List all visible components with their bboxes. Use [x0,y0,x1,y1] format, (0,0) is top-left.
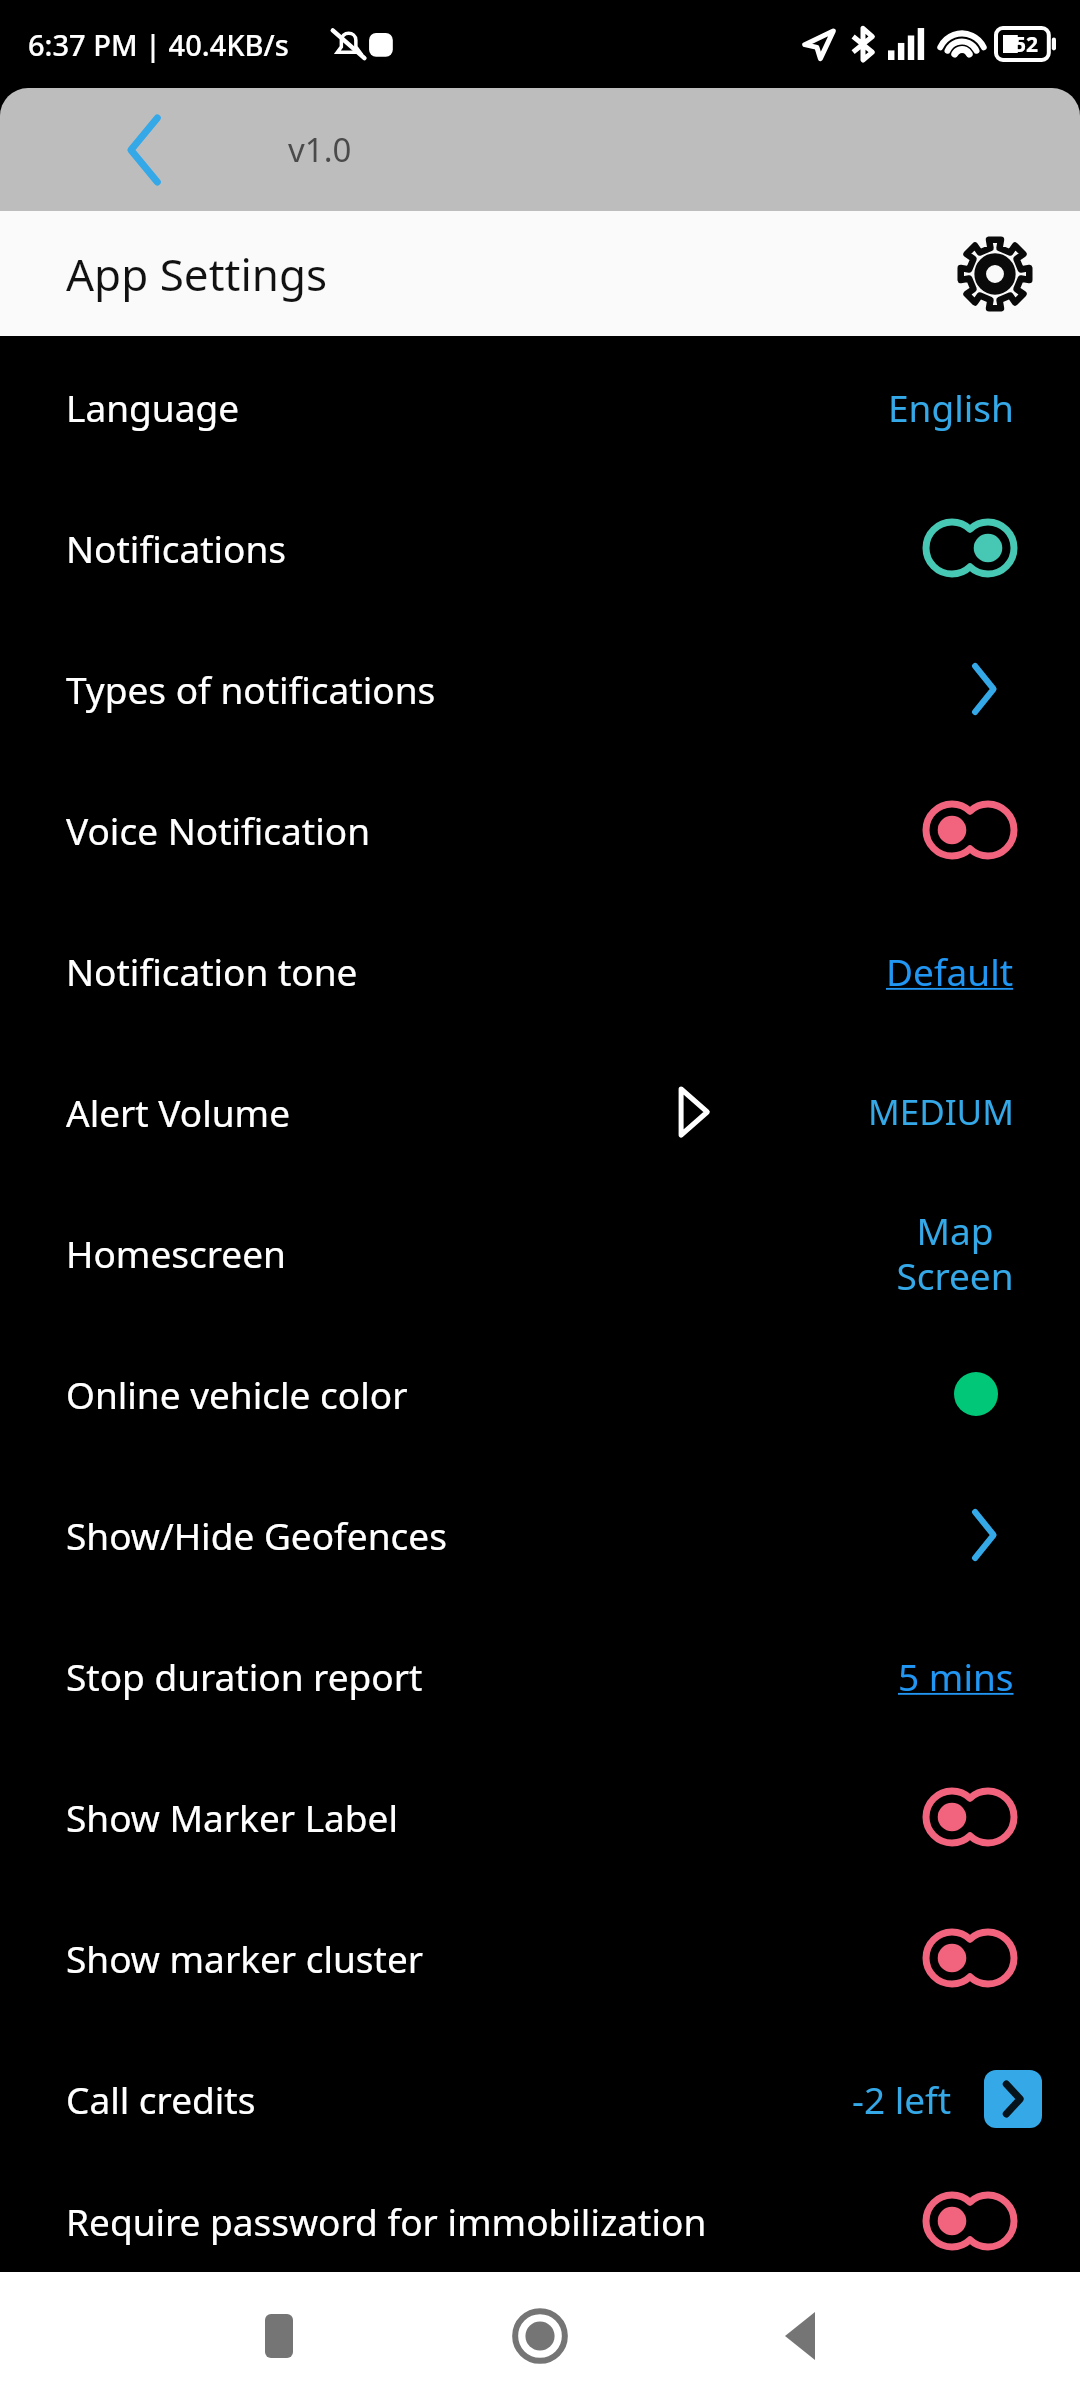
staticText: English [888,382,1014,432]
button[interactable]: Stop duration report [0,1605,1080,1746]
staticText: Require password for immobilization [66,2196,707,2246]
staticText: 52 [1014,30,1039,59]
button[interactable]: Language [0,336,1080,477]
button[interactable]: Types of notifications [0,618,1080,759]
staticText: Voice Notification [66,805,370,855]
button[interactable]: Online vehicle color [0,1323,1080,1464]
staticText: Show Marker Label [66,1792,398,1842]
button[interactable]: Home [492,2288,588,2384]
button[interactable]: Buy call credits [984,2070,1042,2128]
button[interactable]: Notifications [0,477,1080,618]
button[interactable]: Back [100,105,190,195]
staticText: MEDIUM [868,1088,1014,1136]
staticText: Notification tone [66,946,358,996]
staticText: Language [66,382,240,432]
staticText: Types of notifications [66,664,436,714]
button[interactable]: Show/Hide Geofences [0,1464,1080,1605]
button[interactable]: Show Marker Label [0,1746,1080,1887]
staticText: 6:37 PM | 40.4KB/s [28,25,289,64]
staticText: Homescreen [66,1228,286,1278]
staticText: 5 mins [898,1651,1014,1701]
button[interactable]: Require password for immobilization [0,2169,1080,2272]
staticText: v1.0 [288,127,352,172]
staticText: App Settings [66,244,328,304]
staticText: -2 left [852,2074,952,2124]
button[interactable]: Call credits [0,2028,1080,2169]
button[interactable]: Settings [940,219,1050,329]
button[interactable]: Back [753,2288,849,2384]
staticText: Online vehicle color [66,1369,408,1419]
staticText: Call credits [66,2074,256,2124]
button[interactable]: Recent apps [231,2288,327,2384]
button[interactable]: Homescreen [0,1182,1080,1323]
staticText: Alert Volume [66,1087,291,1137]
button[interactable]: Alert Volume [0,1041,1080,1182]
staticText: Default [886,946,1014,996]
button[interactable]: Notification tone [0,900,1080,1041]
staticText: Show/Hide Geofences [66,1510,447,1560]
button[interactable]: Show marker cluster [0,1887,1080,2028]
staticText: Show marker cluster [66,1933,424,1983]
button[interactable]: Voice Notification [0,759,1080,900]
staticText: Map Screen [896,1205,1014,1301]
staticText: Notifications [66,523,287,573]
button[interactable]: Online vehicle colour swatch [954,1372,998,1416]
staticText: Stop duration report [66,1651,423,1701]
